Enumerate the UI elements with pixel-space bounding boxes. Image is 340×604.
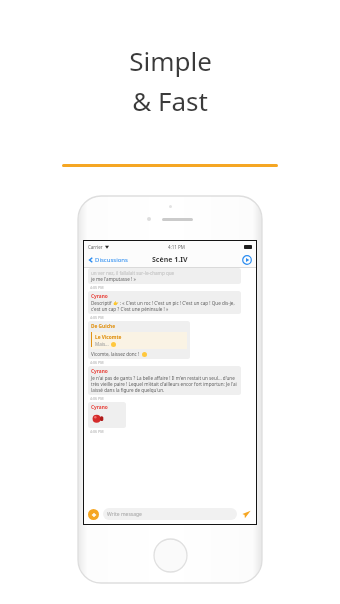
staticText: Carrier xyxy=(88,244,103,250)
staticText: & Fast xyxy=(132,83,208,118)
button[interactable]: Write message xyxy=(103,508,237,520)
staticText: Mais... xyxy=(95,341,109,347)
button[interactable]: un ver nez, il fallalait sur-le-champ qu… xyxy=(88,268,241,284)
staticText: je me l'amputasse ! » xyxy=(91,276,136,282)
staticText: 4:05 PM xyxy=(90,285,104,290)
staticText: 4:06 PM xyxy=(90,360,104,365)
staticText: 4:06 PM xyxy=(90,396,104,401)
button[interactable]: Cyrano xyxy=(88,402,126,428)
button[interactable]: Cyrano xyxy=(88,366,241,395)
staticText: 4:11 PM xyxy=(168,244,185,250)
staticText: Descriptif 👉 : « C'est un roc ! C'est un… xyxy=(91,300,238,312)
staticText: Simple xyxy=(129,43,212,78)
staticText: Cyrano xyxy=(91,293,108,300)
staticText: 4:06 PM xyxy=(90,429,104,434)
button[interactable]: De Guiche xyxy=(88,321,190,359)
staticText: Cyrano xyxy=(91,368,108,375)
staticText: Discussions xyxy=(95,256,128,264)
button[interactable]: Play scene xyxy=(242,255,252,265)
button[interactable]: Cyrano xyxy=(88,291,241,314)
button[interactable]: Add attachment xyxy=(88,509,99,520)
staticText: De Guiche xyxy=(91,323,116,330)
staticText: un ver nez, il fallalait sur-le-champ qu… xyxy=(91,270,175,276)
staticText: Cyrano xyxy=(91,404,108,411)
staticText: Je n'ai pas de gants ? La belle affaire … xyxy=(91,375,238,393)
button[interactable]: Discussions xyxy=(87,255,129,265)
button[interactable]: Send xyxy=(241,509,252,520)
staticText: 4:05 PM xyxy=(90,315,104,320)
staticText: Write message xyxy=(107,511,142,518)
staticText: Le Vicomte xyxy=(95,334,122,341)
staticText: Scène 1.IV xyxy=(152,255,188,265)
staticText: Vicomte, laissez donc ! xyxy=(91,351,140,357)
